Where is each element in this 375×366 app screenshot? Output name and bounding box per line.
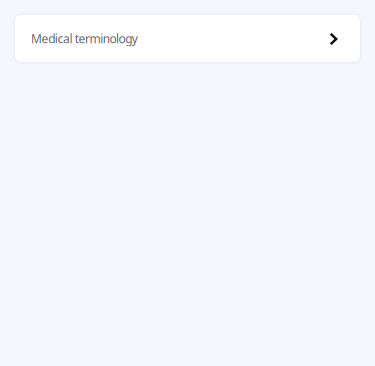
button[interactable]: Medical terminology (15, 15, 360, 62)
staticText: Medical terminology (31, 30, 138, 46)
